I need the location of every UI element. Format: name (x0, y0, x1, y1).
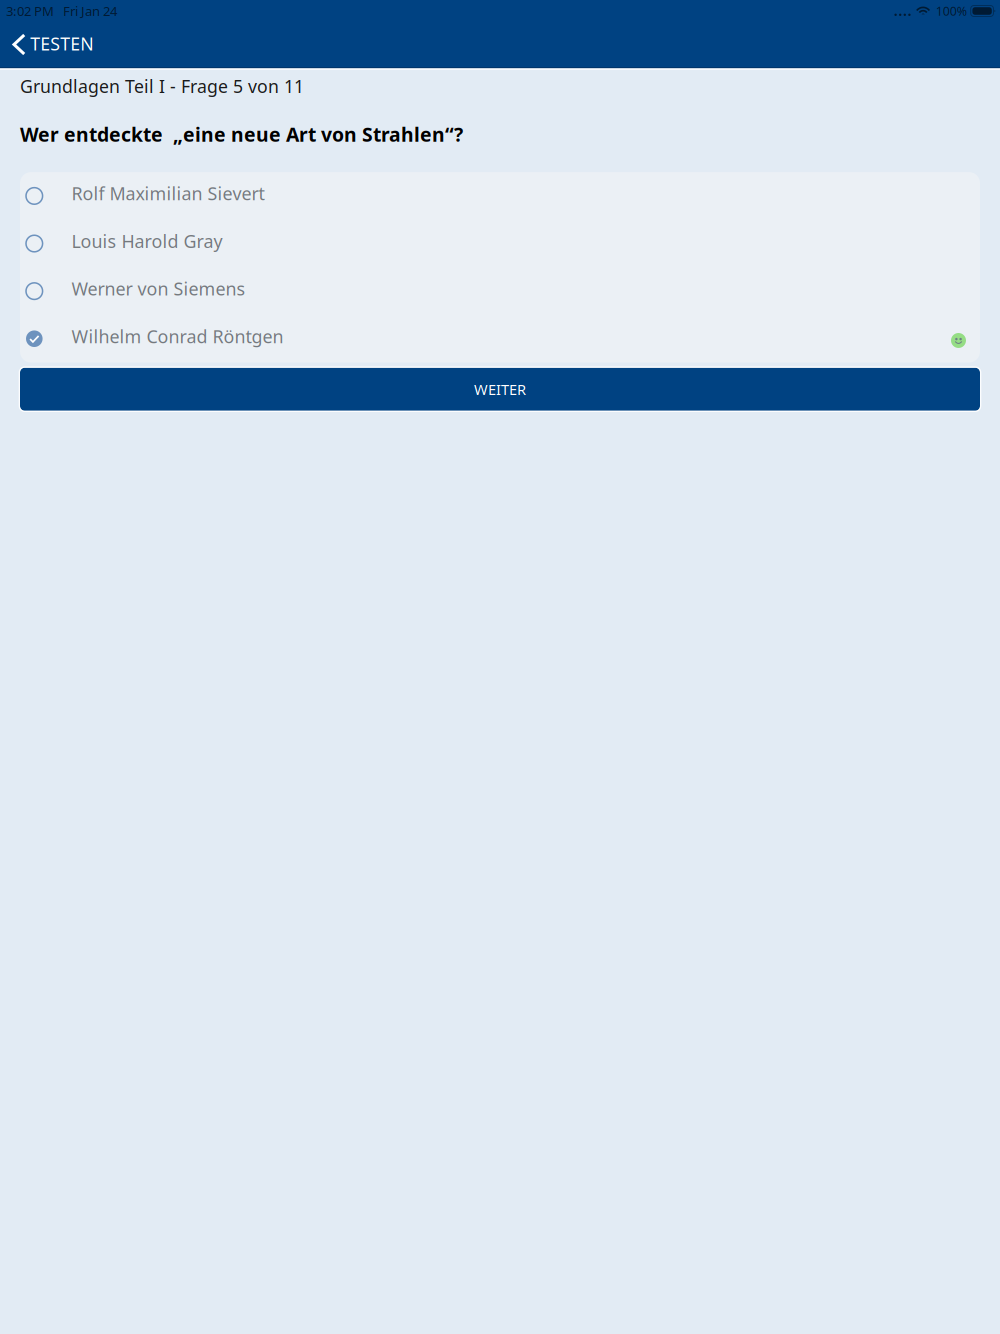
staticText: Wer entdeckte „eine neue Art von Strahle… (20, 121, 463, 147)
button[interactable]: Werner von Siemens (20, 267, 980, 315)
staticText: Rolf Maximilian Sievert (72, 182, 265, 205)
button[interactable]: Rolf Maximilian Sievert (20, 172, 980, 220)
staticText: WEITER (474, 379, 526, 399)
button[interactable]: WEITER (20, 368, 980, 411)
staticText: Wilhelm Conrad Röntgen (72, 324, 284, 348)
staticText: Louis Harold Gray (72, 229, 223, 253)
staticText: 3:02 PM Fri Jan 24 (6, 2, 117, 20)
button[interactable]: Louis Harold Gray (20, 220, 980, 267)
staticText: Grundlagen Teil I - Frage 5 von 11 (20, 74, 304, 98)
button[interactable]: Wilhelm Conrad Röntgen (20, 315, 980, 362)
staticText: Werner von Siemens (72, 277, 246, 300)
button[interactable]: Back to TESTEN (0, 21, 107, 67)
staticText: TESTEN (30, 32, 93, 55)
staticText: 100% (936, 3, 967, 19)
